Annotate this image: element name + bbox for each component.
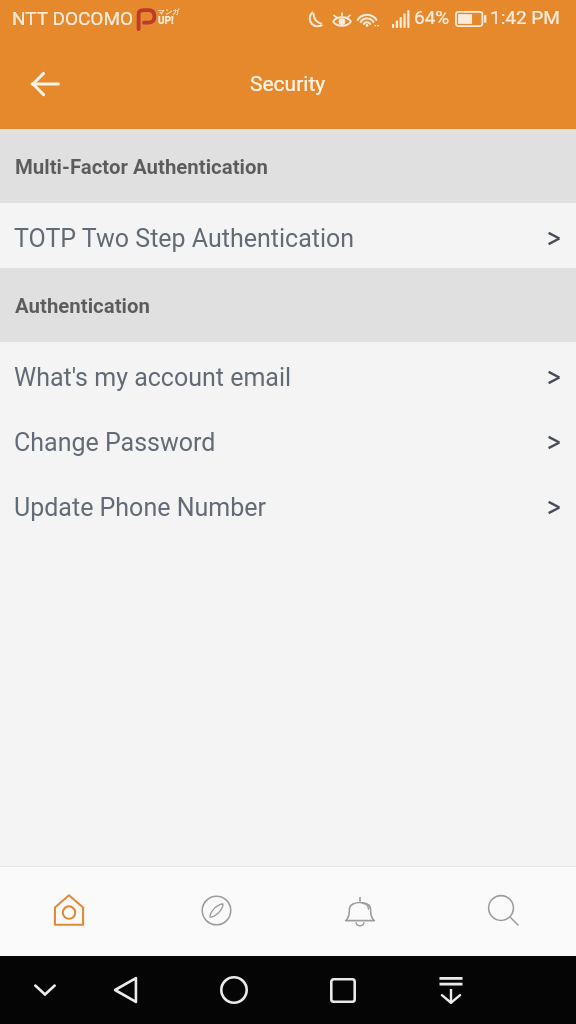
button[interactable]: TOTP Two Step Authentication — [0, 203, 576, 268]
staticText: マンガ — [158, 7, 180, 16]
staticText: What's my account email — [14, 363, 292, 392]
button[interactable]: Update Phone Number — [0, 472, 576, 537]
staticText: Multi-Factor Authentication — [15, 155, 268, 179]
staticText: Change Password — [14, 428, 216, 457]
staticText: TOTP Two Step Authentication — [14, 224, 355, 253]
staticText: Update Phone Number — [14, 493, 266, 522]
button[interactable]: Collapse — [9, 956, 81, 1024]
staticText: 64% — [414, 6, 450, 28]
button[interactable]: Explore — [144, 867, 288, 956]
button[interactable]: What's my account email — [0, 342, 576, 407]
staticText: NTT DOCOMO — [12, 7, 134, 29]
button[interactable]: Home — [0, 867, 144, 956]
staticText: 1:42 PM — [490, 6, 560, 28]
staticText: UP! — [158, 15, 174, 27]
button[interactable]: Home — [198, 956, 270, 1024]
button[interactable]: Back — [89, 956, 161, 1024]
button[interactable]: Change Password — [0, 407, 576, 472]
staticText: Security — [250, 72, 326, 97]
button[interactable]: Hide navigation bar — [415, 956, 487, 1024]
button[interactable]: Recents — [307, 956, 379, 1024]
button[interactable]: Notifications — [288, 867, 432, 956]
button[interactable]: Search — [432, 867, 576, 956]
button[interactable]: Back — [14, 53, 76, 115]
staticText: Authentication — [15, 294, 150, 318]
